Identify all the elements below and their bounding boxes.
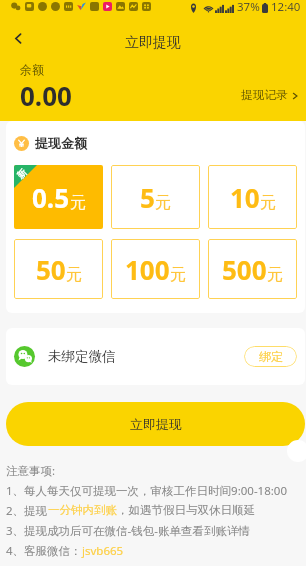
staticText: 余额 — [20, 62, 44, 77]
staticText: 一分钟内到账 — [48, 503, 117, 517]
staticText: 50 — [36, 252, 66, 287]
staticText: 12:40 — [271, 0, 301, 15]
staticText: 提现记录 — [241, 88, 288, 103]
staticText: 5 — [140, 180, 155, 215]
staticText: 10 — [230, 180, 260, 215]
button[interactable]: 0.5 — [14, 165, 103, 229]
button[interactable]: Back — [2, 22, 34, 54]
button[interactable]: 100 — [111, 239, 200, 299]
staticText: 0.5 — [32, 180, 70, 215]
button[interactable]: 绑定 — [244, 346, 297, 367]
button[interactable]: 50 — [14, 239, 103, 299]
staticText: 立即提现 — [130, 416, 182, 432]
staticText: 元 — [170, 265, 186, 285]
staticText: 37% — [237, 0, 260, 15]
staticText: 未绑定微信 — [48, 348, 116, 365]
staticText: 元 — [155, 193, 171, 213]
button[interactable]: 500 — [208, 239, 297, 299]
staticText: jsvb665 — [82, 543, 124, 559]
button[interactable]: 10 — [208, 165, 297, 229]
staticText: 立即提现 — [125, 34, 181, 52]
staticText: 元 — [66, 265, 82, 285]
button[interactable]: 提现记录 — [237, 84, 303, 107]
button[interactable]: Floating assistant — [287, 440, 306, 462]
staticText: 绑定 — [259, 349, 283, 364]
staticText: 提现金额 — [35, 135, 87, 151]
staticText: 500 — [222, 252, 267, 287]
staticText: ，如遇节假日与双休日顺延 — [117, 503, 255, 517]
staticText: 0.00 — [20, 78, 72, 113]
staticText: 1、每人每天仅可提现一次，审核工作日时间9:00-18:00 — [6, 483, 287, 499]
button[interactable]: 未绑定微信 — [6, 328, 305, 385]
staticText: 100 — [125, 252, 170, 287]
staticText: 元 — [70, 193, 86, 213]
staticText: 4、客服微信： — [6, 543, 82, 559]
staticText: 注意事项: — [6, 463, 56, 479]
button[interactable]: 立即提现 — [6, 402, 305, 446]
staticText: 2、提现 — [6, 503, 48, 519]
staticText: 元 — [260, 193, 276, 213]
staticText: 元 — [267, 265, 283, 285]
staticText: 新 — [14, 166, 28, 180]
button[interactable]: 5 — [111, 165, 200, 229]
staticText: 3、提现成功后可在微信-钱包-账单查看到账详情 — [6, 523, 250, 539]
